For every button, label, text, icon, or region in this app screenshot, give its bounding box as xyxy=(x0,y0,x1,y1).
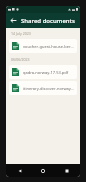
staticText: voucher-guest-house-bergen.pdf xyxy=(23,44,74,49)
button[interactable]: Back xyxy=(6,13,21,28)
staticText: 14 July 2023 xyxy=(11,31,31,36)
button[interactable]: qadra-norway-17.53.pdf xyxy=(9,65,77,79)
staticText: itinerary-discover-norway.pdf xyxy=(23,86,74,91)
button[interactable]: Home xyxy=(33,164,53,177)
button[interactable]: itinerary-discover-norway.pdf xyxy=(9,81,77,95)
button[interactable]: voucher-guest-house-bergen.pdf xyxy=(9,39,77,53)
button[interactable]: Recent apps xyxy=(57,164,77,177)
button[interactable]: Back xyxy=(10,164,30,177)
staticText: qadra-norway-17.53.pdf xyxy=(23,70,69,75)
staticText: Shared documents xyxy=(21,17,75,25)
staticText: 06/06/2023 xyxy=(11,57,30,62)
